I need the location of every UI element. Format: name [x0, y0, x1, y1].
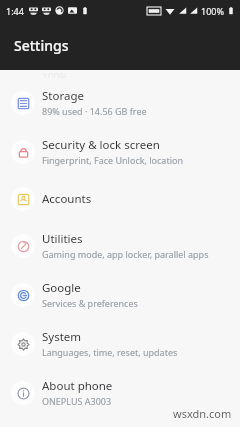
- staticText: Accounts: [42, 191, 92, 207]
- staticText: wsxdn.com: [173, 406, 232, 421]
- button[interactable]: Google: [0, 270, 240, 319]
- staticText: Google: [42, 280, 81, 296]
- staticText: Gaming mode, app locker, parallel apps: [42, 248, 209, 260]
- button[interactable]: Security & lock screen: [0, 127, 240, 176]
- staticText: System: [42, 329, 82, 345]
- staticText: Fingerprint, Face Unlock, location: [42, 154, 183, 166]
- staticText: 100%: [42, 70, 68, 78]
- staticText: ONEPLUS A3003: [42, 395, 112, 407]
- staticText: About phone: [42, 378, 113, 394]
- button[interactable]: Storage: [0, 78, 240, 127]
- button[interactable]: System: [0, 319, 240, 368]
- staticText: Languages, time, reset, updates: [42, 346, 178, 358]
- button[interactable]: Accounts: [0, 176, 240, 221]
- button[interactable]: About phone: [0, 368, 240, 417]
- staticText: Utilities: [42, 231, 83, 247]
- button[interactable]: Utilities: [0, 221, 240, 270]
- staticText: 89% used · 14.56 GB free: [42, 105, 147, 117]
- staticText: Storage: [42, 88, 84, 104]
- staticText: Services & preferences: [42, 297, 138, 309]
- staticText: Settings: [14, 36, 69, 55]
- staticText: 1:44: [6, 5, 24, 17]
- staticText: 100%: [201, 5, 224, 17]
- staticText: Security & lock screen: [42, 137, 160, 153]
